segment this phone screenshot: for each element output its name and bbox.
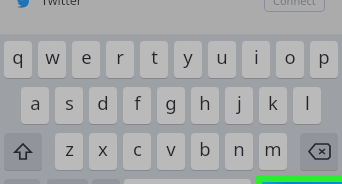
button[interactable]: s	[55, 87, 83, 124]
staticText: v	[166, 136, 176, 161]
button[interactable]: q	[4, 41, 32, 78]
staticText: a	[30, 90, 41, 115]
button[interactable]: v	[157, 133, 185, 170]
staticText: l	[305, 90, 310, 115]
button[interactable]: Backspace	[300, 133, 338, 170]
button[interactable]: j	[225, 87, 253, 124]
button[interactable]: w	[38, 41, 66, 78]
button[interactable]: e	[72, 41, 100, 78]
button[interactable]: h	[191, 87, 219, 124]
button[interactable]: u	[208, 41, 236, 78]
button[interactable]: m	[259, 133, 287, 170]
staticText: y	[183, 44, 193, 69]
staticText: h	[199, 90, 211, 115]
other: Twitter	[17, 0, 31, 7]
staticText: x	[98, 136, 108, 161]
staticText: Twitter	[41, 0, 82, 9]
staticText: f	[134, 90, 141, 115]
staticText: t	[151, 44, 158, 69]
staticText: w	[45, 44, 60, 69]
button[interactable]: t	[140, 41, 168, 78]
staticText: b	[199, 136, 211, 161]
button[interactable]: Shift	[4, 133, 42, 170]
button[interactable]: p	[310, 41, 338, 78]
staticText: Connect	[273, 0, 316, 8]
staticText: j	[237, 90, 242, 115]
button[interactable]: r	[106, 41, 134, 78]
button[interactable]: k	[259, 87, 287, 124]
staticText: i	[254, 44, 259, 69]
staticText: c	[133, 136, 142, 161]
staticText: u	[216, 44, 228, 69]
button[interactable]	[256, 175, 342, 184]
button[interactable]: g	[157, 87, 185, 124]
staticText: r	[116, 44, 124, 69]
staticText: k	[268, 90, 278, 115]
button[interactable]: a	[21, 87, 49, 124]
button[interactable]: f	[123, 87, 151, 124]
staticText: d	[97, 90, 109, 115]
button[interactable]: l	[293, 87, 321, 124]
staticText: s	[65, 90, 74, 115]
staticText: q	[12, 44, 24, 69]
staticText: o	[284, 44, 296, 69]
staticText: p	[318, 44, 330, 69]
button[interactable]: d	[89, 87, 117, 124]
button[interactable]: i	[242, 41, 270, 78]
button[interactable]: n	[225, 133, 253, 170]
button[interactable]: Connect	[264, 0, 325, 12]
staticText: m	[264, 136, 282, 161]
button[interactable]: c	[123, 133, 151, 170]
button[interactable]: b	[191, 133, 219, 170]
staticText: z	[65, 136, 74, 161]
button[interactable]: x	[89, 133, 117, 170]
staticText: e	[81, 44, 92, 69]
button[interactable]: z	[55, 133, 83, 170]
staticText: n	[233, 136, 245, 161]
button[interactable]: o	[276, 41, 304, 78]
staticText: g	[165, 90, 177, 115]
button[interactable]: y	[174, 41, 202, 78]
